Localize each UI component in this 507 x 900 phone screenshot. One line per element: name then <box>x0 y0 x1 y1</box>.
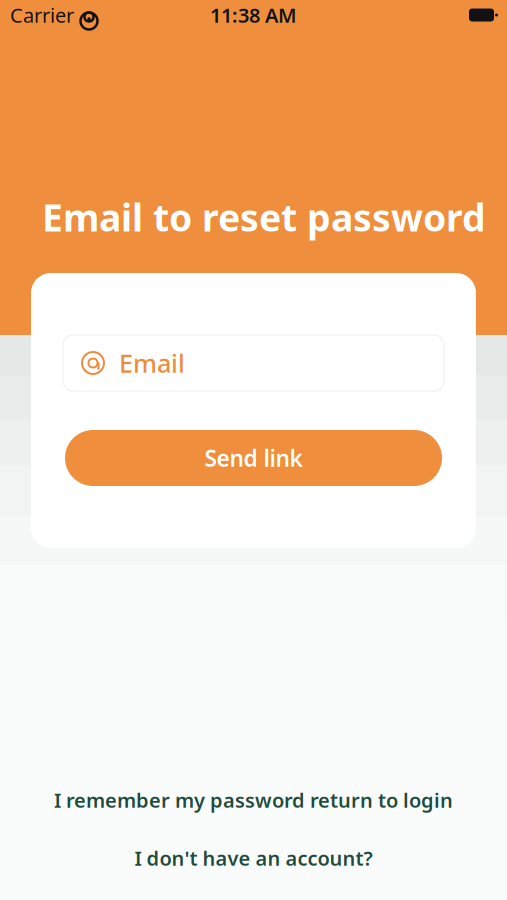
button[interactable]: I don't have an account? <box>0 840 507 876</box>
staticText: 11:38 AM <box>210 2 297 28</box>
staticText: I remember my password return to login <box>54 787 453 813</box>
staticText: Send link <box>204 443 302 473</box>
staticText: Email <box>119 346 185 380</box>
staticText: Email to reset password <box>42 192 486 242</box>
button[interactable]: I remember my password return to login <box>0 782 507 818</box>
button[interactable]: Send link <box>65 430 442 486</box>
staticText: I don't have an account? <box>134 845 372 871</box>
staticText: Carrier <box>10 2 74 28</box>
